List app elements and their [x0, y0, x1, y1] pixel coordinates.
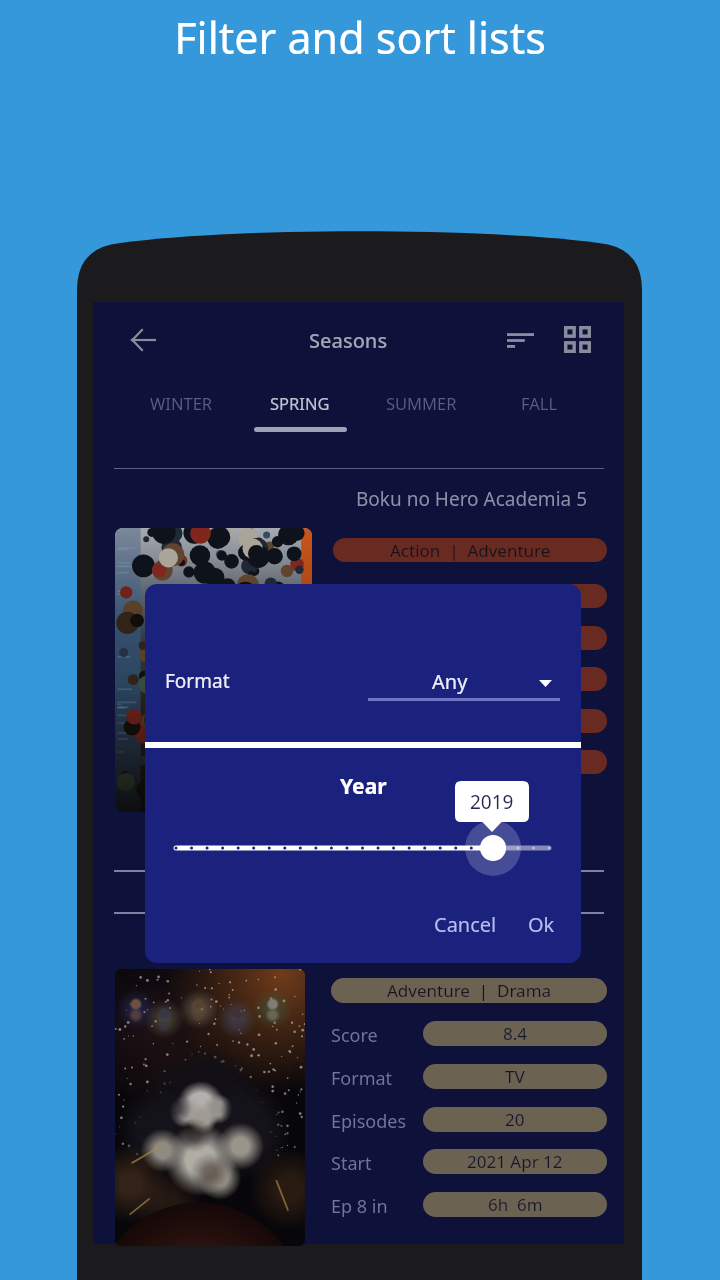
- staticText: Action | Adventure: [390, 539, 551, 562]
- staticText: TV: [505, 1065, 525, 1088]
- staticText: 2019: [470, 789, 514, 815]
- button[interactable]: 2021 Apr 12: [423, 1149, 607, 1174]
- staticText: 8.4: [503, 1022, 528, 1045]
- button[interactable]: SUMMER: [361, 382, 481, 430]
- staticText: Format: [331, 1066, 393, 1091]
- staticText: Adventure | Drama: [387, 979, 552, 1002]
- button[interactable]: Ok: [516, 903, 567, 946]
- staticText: Score: [331, 1023, 378, 1048]
- button[interactable]: [115, 528, 312, 812]
- button[interactable]: SPRING: [240, 382, 360, 430]
- staticText: SPRING: [270, 392, 330, 414]
- staticText: WINTER: [150, 392, 213, 414]
- staticText: Ok: [528, 911, 555, 938]
- staticText: Year: [340, 772, 387, 801]
- staticText: Boku no Hero Academia 5: [356, 486, 588, 512]
- staticText: Start: [331, 1151, 372, 1176]
- button[interactable]: Adventure | Drama: [331, 978, 607, 1003]
- button[interactable]: 6h 6m: [423, 1192, 607, 1217]
- staticText: Seasons: [309, 327, 388, 354]
- button[interactable]: Grid view: [553, 315, 601, 363]
- button[interactable]: Cancel: [422, 903, 509, 946]
- button[interactable]: TV: [423, 1064, 607, 1089]
- staticText: Format: [165, 668, 230, 694]
- staticText: Ep 8 in: [331, 1194, 388, 1219]
- button[interactable]: [115, 969, 305, 1246]
- staticText: SUMMER: [386, 392, 457, 414]
- staticText: 2021 Apr 12: [467, 1150, 563, 1173]
- button[interactable]: Action | Adventure: [333, 538, 607, 562]
- staticText: 20: [505, 1108, 525, 1131]
- staticText: 6h 6m: [488, 1193, 543, 1216]
- button[interactable]: FALL: [479, 382, 599, 430]
- button[interactable]: 8.4: [423, 1021, 607, 1046]
- staticText: Episodes: [331, 1109, 407, 1134]
- staticText: FALL: [521, 392, 558, 414]
- button[interactable]: WINTER: [121, 382, 241, 430]
- button[interactable]: Back: [119, 316, 167, 364]
- staticText: Any: [432, 668, 468, 695]
- button[interactable]: 20: [423, 1107, 607, 1132]
- button[interactable]: Sort: [496, 316, 544, 364]
- staticText: Cancel: [434, 911, 497, 938]
- staticText: Filter and sort lists: [174, 8, 546, 67]
